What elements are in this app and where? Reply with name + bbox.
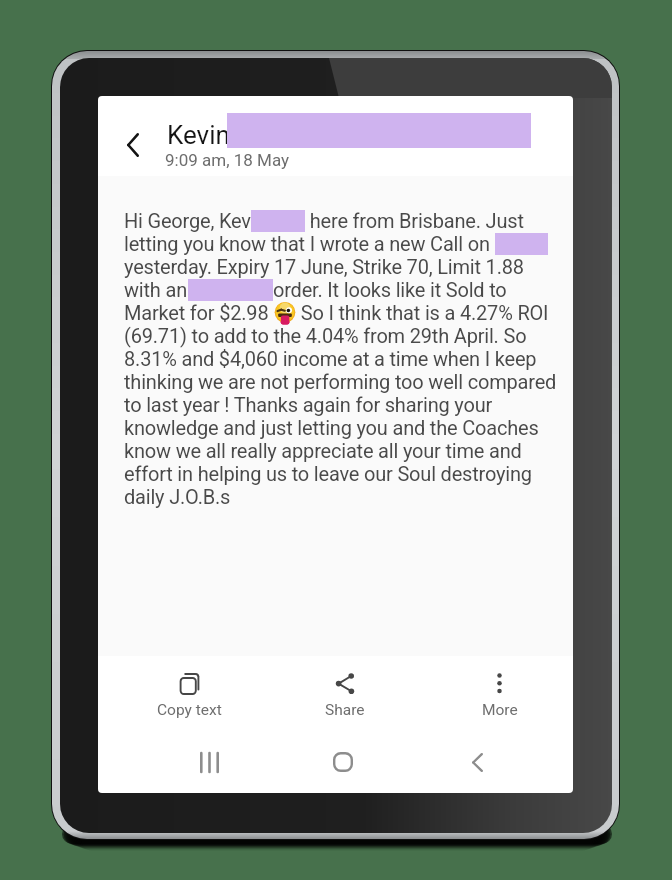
- staticText: knowledge and just letting you and the C…: [124, 416, 539, 439]
- staticText: (69.71) to add to the 4.04% from 29th Ap…: [124, 324, 527, 347]
- staticText: effort in helping us to leave our Soul d…: [124, 462, 532, 485]
- button[interactable]: Share: [267, 656, 422, 739]
- staticText: letting you know that I wrote a new Call…: [124, 232, 495, 255]
- staticText: daily J.O.B.s: [124, 485, 231, 508]
- staticText: Copy text: [157, 701, 222, 719]
- button[interactable]: More: [422, 656, 573, 739]
- staticText: thinking we are not performing too well …: [124, 370, 557, 393]
- staticText: order. It looks like it Sold to: [273, 278, 507, 301]
- button[interactable]: Copy text: [111, 656, 267, 739]
- staticText: 8.31% and $4,060 income at a time when I…: [124, 347, 537, 370]
- staticText: here from Brisbane. Just: [305, 209, 524, 232]
- staticText: 9:09 am, 18 May: [165, 150, 290, 170]
- staticText: Market for $2.98: [124, 301, 274, 324]
- staticText: So I think that is a 4.27% ROI: [296, 301, 549, 324]
- staticText: More: [482, 701, 518, 719]
- staticText: Hi George, Kev: [124, 209, 251, 232]
- button[interactable]: Home: [276, 735, 410, 789]
- button[interactable]: Recent apps: [142, 735, 276, 789]
- button[interactable]: Back: [108, 120, 157, 169]
- staticText: know we all really appreciate all your t…: [124, 439, 522, 462]
- staticText: yesterday. Expiry 17 June, Strike 70, Li…: [124, 255, 524, 278]
- staticText: with an: [124, 278, 188, 301]
- button[interactable]: Back: [410, 735, 544, 789]
- staticText: Kevin: [167, 120, 230, 150]
- staticText: to last year ! Thanks again for sharing …: [124, 393, 493, 416]
- staticText: Share: [325, 701, 365, 719]
